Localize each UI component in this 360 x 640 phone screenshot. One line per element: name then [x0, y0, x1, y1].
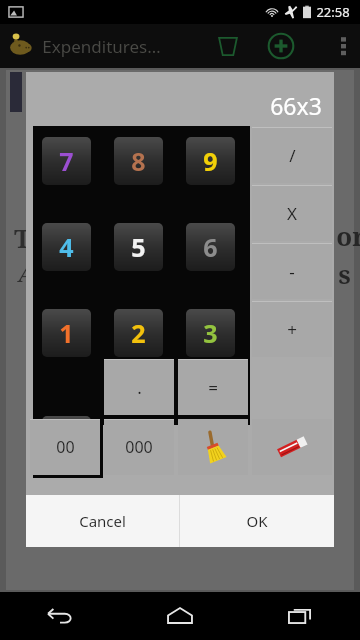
staticText: 7 [59, 144, 74, 178]
staticText: 000 [125, 436, 153, 458]
staticText: 00 [56, 436, 75, 458]
staticText: 2 [131, 316, 146, 350]
staticText: - [289, 260, 295, 283]
button[interactable]: Back [0, 592, 120, 640]
staticText: 8 [131, 144, 146, 178]
staticText: X [287, 202, 297, 225]
staticText: Ta [14, 220, 46, 255]
button[interactable]: Trash [208, 26, 248, 66]
button[interactable]: More options [326, 24, 360, 68]
staticText: A [18, 258, 34, 288]
staticText: or [336, 218, 360, 253]
button[interactable]: . [104, 359, 174, 415]
button[interactable]: X [252, 185, 332, 241]
button[interactable]: / [252, 127, 332, 183]
button[interactable]: 8 [114, 137, 163, 185]
staticText: 22:58 [316, 3, 350, 21]
button[interactable]: Add [260, 25, 302, 67]
button[interactable]: 00 [30, 419, 100, 475]
button[interactable]: Clear [178, 419, 248, 475]
staticText: + [287, 318, 297, 341]
staticText: Expenditures… [42, 35, 161, 58]
staticText: 6 [203, 230, 218, 264]
button[interactable]: OK [180, 495, 334, 547]
staticText: 9 [203, 144, 218, 178]
button[interactable]: = [178, 359, 248, 415]
button[interactable]: 3 [186, 309, 235, 357]
button[interactable]: 9 [186, 137, 235, 185]
button[interactable]: 7 [42, 137, 91, 185]
button[interactable]: 0 [42, 416, 91, 464]
button[interactable]: - [252, 243, 332, 299]
staticText: / [289, 144, 296, 167]
button[interactable]: 1 [42, 309, 91, 357]
staticText: 5 [131, 230, 146, 264]
staticText: 1 [59, 316, 74, 350]
button[interactable]: 6 [186, 223, 235, 271]
button[interactable]: Home [120, 592, 240, 640]
button[interactable]: Backspace [252, 419, 332, 475]
button[interactable]: 4 [42, 223, 91, 271]
staticText: 3 [203, 316, 218, 350]
button[interactable]: 000 [104, 419, 174, 475]
staticText: s [338, 256, 351, 291]
staticText: = [208, 376, 218, 399]
button[interactable]: Recent apps [240, 592, 360, 640]
staticText: 66x3 [270, 90, 322, 121]
button[interactable]: 5 [114, 223, 163, 271]
staticText: OK [246, 511, 268, 531]
staticText: 0 [59, 423, 74, 457]
staticText: . [137, 376, 142, 399]
staticText: 4 [59, 230, 74, 264]
button[interactable]: 2 [114, 309, 163, 357]
button[interactable]: Cancel [26, 495, 179, 547]
staticText: Cancel [79, 511, 126, 531]
button[interactable]: + [252, 301, 332, 357]
